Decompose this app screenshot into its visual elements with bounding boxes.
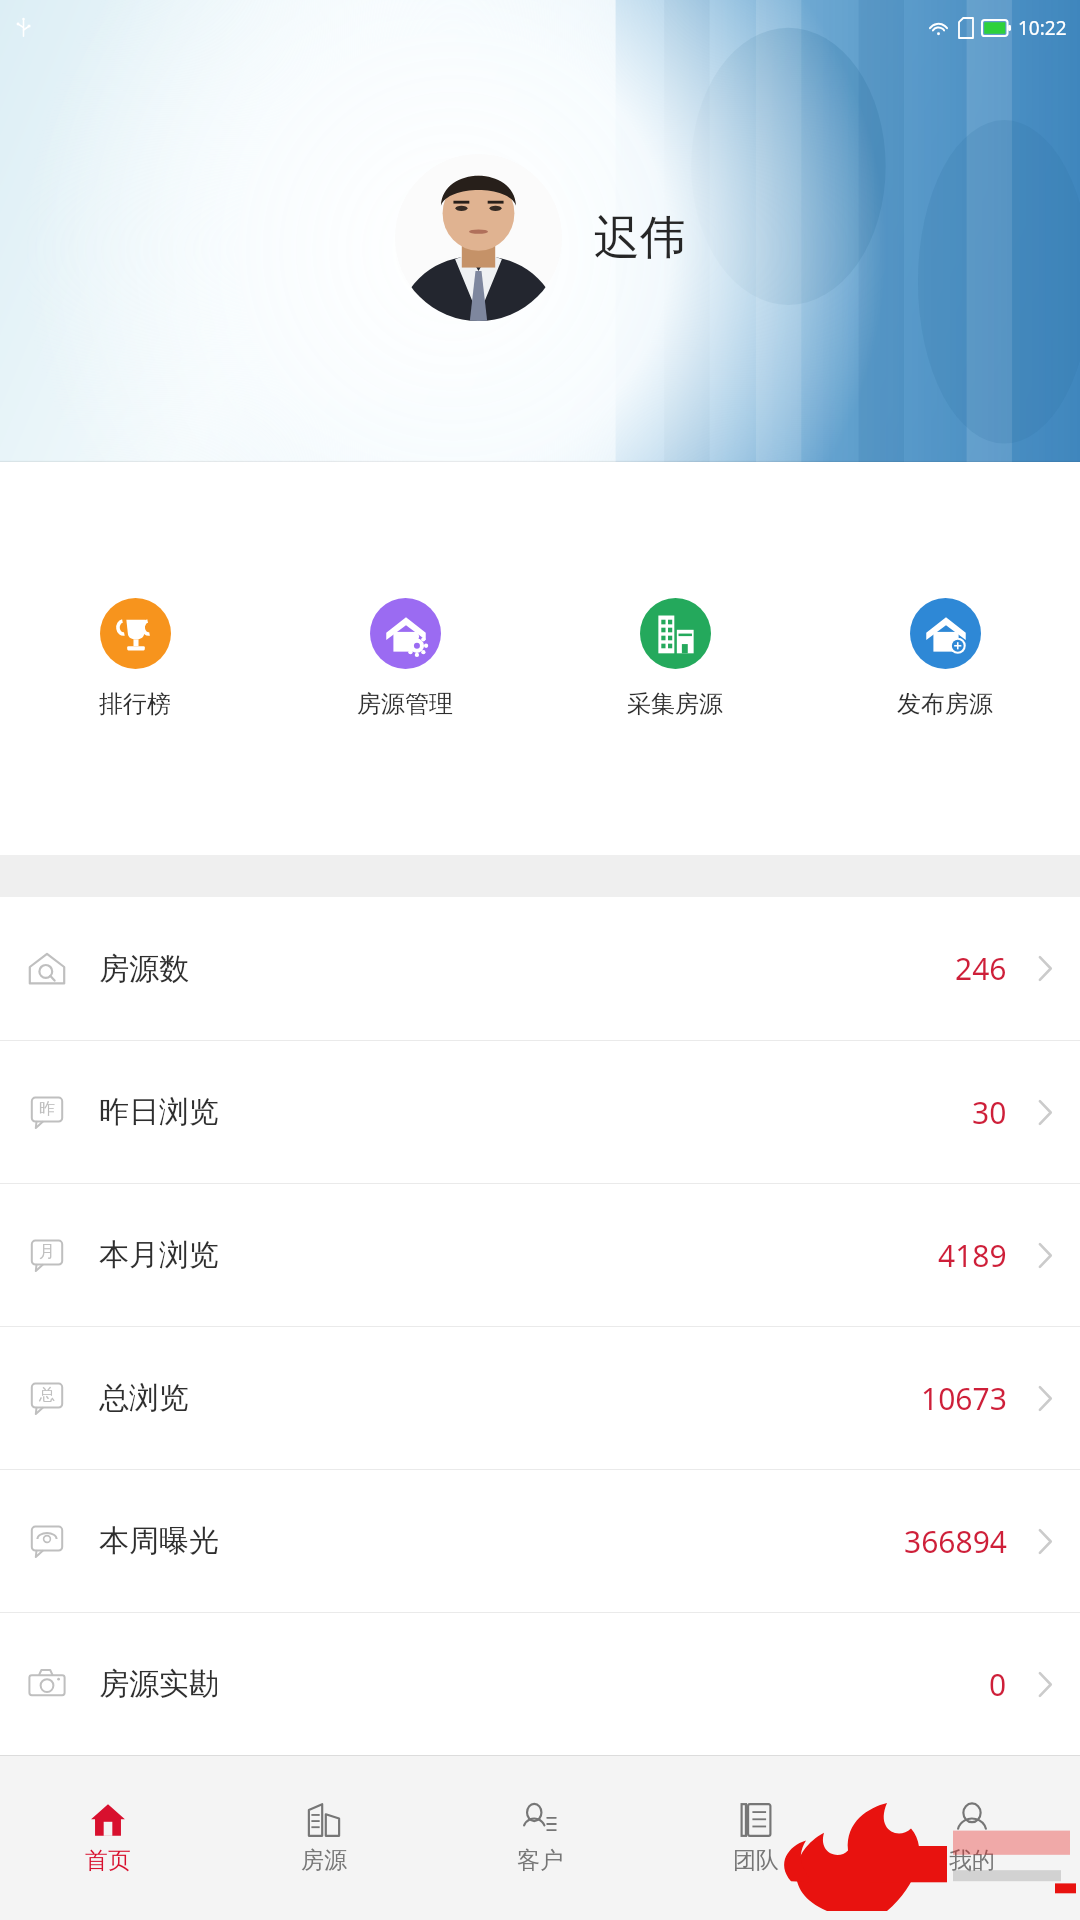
button[interactable]: 我的 (864, 1756, 1080, 1920)
staticText: 4189 (938, 1235, 1007, 1276)
staticText: 房源 (301, 1846, 347, 1875)
staticText: 366894 (904, 1521, 1007, 1562)
button[interactable]: 昨 (0, 1041, 1080, 1183)
button[interactable]: 月 (0, 1184, 1080, 1326)
button[interactable]: 发布房源 (810, 462, 1080, 855)
staticText: 本周曝光 (99, 1522, 219, 1560)
staticText: 房源数 (99, 950, 189, 988)
staticText: 我的 (949, 1846, 995, 1875)
staticText: 月 (39, 1242, 55, 1262)
staticText: 客户 (517, 1846, 563, 1875)
button[interactable]: 本周曝光 (0, 1470, 1080, 1612)
staticText: 0 (989, 1664, 1007, 1705)
button[interactable]: 房源 (216, 1756, 432, 1920)
button[interactable]: 团队 (648, 1756, 864, 1920)
staticText: 昨日浏览 (99, 1093, 219, 1131)
staticText: 迟伟 (594, 209, 686, 267)
staticText: 246 (955, 948, 1007, 989)
staticText: 昨 (39, 1099, 55, 1119)
staticText: 10673 (921, 1378, 1007, 1419)
staticText: 本月浏览 (99, 1236, 219, 1274)
staticText: 10:22 (1018, 15, 1067, 41)
staticText: 首页 (85, 1846, 131, 1875)
button[interactable]: 采集房源 (540, 462, 810, 855)
button[interactable]: 房源管理 (270, 462, 540, 855)
staticText: 团队 (733, 1846, 779, 1875)
staticText: 总 (39, 1385, 55, 1405)
button[interactable]: 房源数 (0, 897, 1080, 1040)
button[interactable]: 房源实勘 (0, 1613, 1080, 1755)
button[interactable]: 首页 (0, 1756, 216, 1920)
staticText: 房源实勘 (99, 1665, 219, 1703)
staticText: 30 (972, 1092, 1007, 1133)
staticText: 排行榜 (99, 689, 171, 719)
staticText: 采集房源 (627, 689, 723, 719)
button[interactable]: 排行榜 (0, 462, 270, 855)
staticText: 总浏览 (99, 1379, 189, 1417)
staticText: 发布房源 (897, 689, 993, 719)
button[interactable]: 总 (0, 1327, 1080, 1469)
staticText: 房源管理 (357, 689, 453, 719)
button[interactable]: 客户 (432, 1756, 648, 1920)
